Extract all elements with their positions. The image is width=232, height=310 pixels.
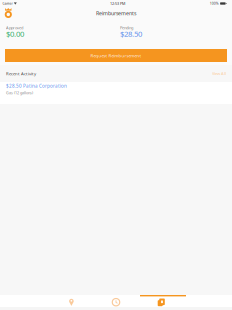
staticText: Reimbursements bbox=[96, 10, 136, 17]
staticText: View All bbox=[212, 71, 226, 76]
staticText: $28.50 bbox=[120, 28, 142, 39]
staticText: Carrier bbox=[2, 1, 12, 6]
staticText: Recent Activity bbox=[6, 71, 36, 76]
button[interactable]: History bbox=[94, 295, 140, 307]
button[interactable]: $28.50 Patina Corporation bbox=[0, 82, 232, 104]
button[interactable]: Reimbursements bbox=[140, 295, 186, 307]
staticText: Gas (12 gallons) bbox=[6, 90, 33, 95]
staticText: $0.00 bbox=[6, 28, 24, 39]
staticText: Pending bbox=[120, 25, 133, 30]
staticText: $28.50 Patina Corporation bbox=[6, 83, 67, 89]
staticText: 12:53 PM bbox=[110, 1, 125, 6]
staticText: 100% bbox=[210, 1, 219, 6]
button[interactable]: View All bbox=[212, 71, 226, 76]
staticText: Request Reimbursement bbox=[90, 53, 141, 58]
button[interactable]: Locations bbox=[48, 295, 94, 307]
staticText: Approved bbox=[6, 25, 23, 30]
button[interactable]: Request Reimbursement bbox=[5, 49, 227, 62]
